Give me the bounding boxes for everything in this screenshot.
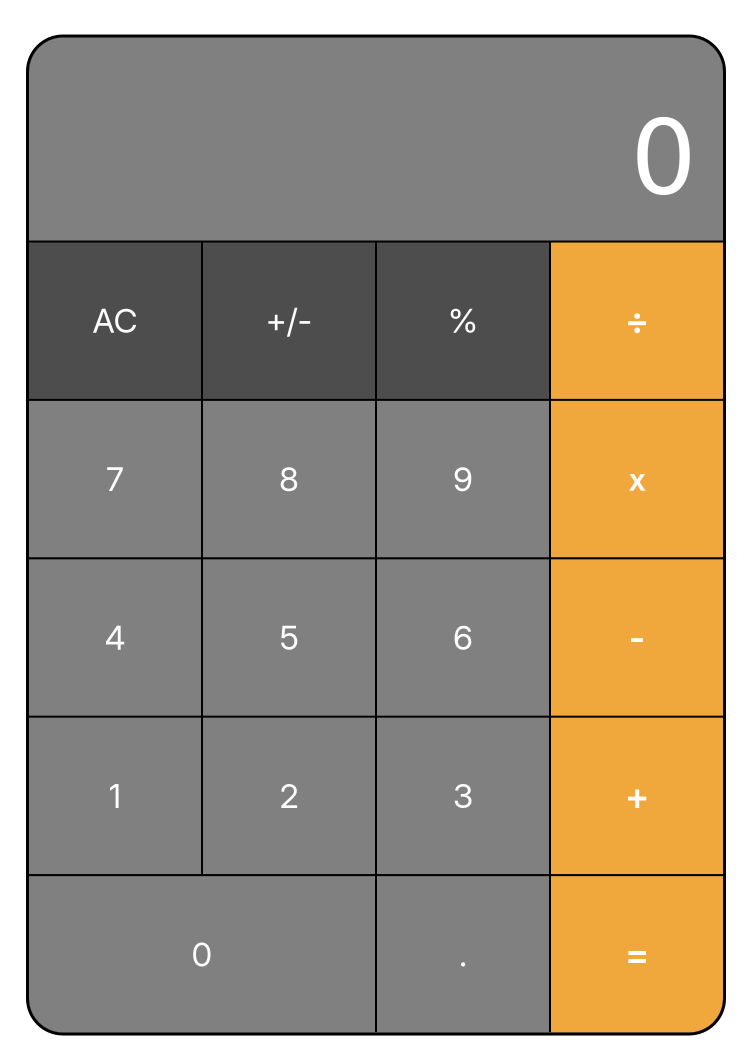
button[interactable]: Add <box>551 718 723 874</box>
button[interactable]: Percent <box>377 242 549 399</box>
button[interactable]: 6 <box>377 559 549 716</box>
staticText: = <box>625 932 649 977</box>
button[interactable]: Divide <box>551 242 723 399</box>
staticText: - <box>628 615 645 660</box>
button[interactable]: 2 <box>203 718 375 874</box>
button[interactable]: 9 <box>377 401 549 557</box>
staticText: 9 <box>453 459 473 499</box>
staticText: 0 <box>630 97 696 218</box>
staticText: 6 <box>453 617 473 658</box>
staticText: 8 <box>279 459 299 499</box>
staticText: ÷ <box>625 298 649 343</box>
button[interactable]: 4 <box>29 559 201 716</box>
staticText: 5 <box>279 617 298 658</box>
staticText: 0 <box>191 934 212 974</box>
button[interactable]: Equals <box>551 876 723 1032</box>
staticText: x <box>628 460 645 498</box>
staticText: % <box>448 300 478 341</box>
button[interactable]: 0 <box>29 876 375 1032</box>
staticText: + <box>625 773 649 818</box>
button[interactable]: 5 <box>203 559 375 716</box>
button[interactable]: 1 <box>29 718 201 874</box>
button[interactable]: Multiply <box>551 401 723 557</box>
staticText: +/- <box>265 300 312 341</box>
button[interactable]: 7 <box>29 401 201 557</box>
staticText: 7 <box>106 459 124 499</box>
button[interactable]: All clear <box>29 242 201 399</box>
button[interactable]: 3 <box>377 718 549 874</box>
button[interactable]: 8 <box>203 401 375 557</box>
button[interactable]: Plus minus <box>203 242 375 399</box>
staticText: . <box>459 934 467 974</box>
button[interactable]: Subtract <box>551 559 723 716</box>
staticText: AC <box>92 300 137 341</box>
staticText: 1 <box>108 776 121 816</box>
staticText: 4 <box>104 617 125 658</box>
staticText: 3 <box>453 776 473 816</box>
staticText: 2 <box>279 776 298 816</box>
